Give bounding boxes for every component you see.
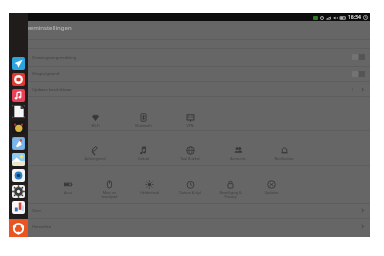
button[interactable]: Music [12, 89, 25, 102]
button[interactable]: Accounts [220, 146, 256, 161]
button[interactable]: Camera [12, 169, 25, 182]
staticText: Herstellen [32, 224, 52, 229]
staticText: Wi-Fi [91, 123, 100, 128]
button[interactable]: Game [12, 121, 25, 134]
button[interactable]: Taal & tekst [172, 146, 208, 161]
button[interactable]: Datum & tijd [172, 180, 208, 195]
button[interactable]: Wi-Fi [77, 113, 113, 128]
staticText: Over [32, 208, 42, 213]
staticText: Systeeminstellingen [15, 24, 72, 32]
button[interactable]: VPN [172, 113, 208, 128]
button[interactable]: Updates [253, 180, 289, 195]
staticText: Datum & tijd [179, 190, 201, 195]
staticText: Taal & tekst [180, 156, 200, 161]
button[interactable]: Photos [12, 153, 25, 166]
button[interactable]: Herstellen [9, 218, 370, 234]
staticText: Helderheid [140, 190, 159, 195]
button[interactable]: Maps [12, 137, 25, 150]
button[interactable]: Vliegtuigstand [9, 66, 370, 81]
staticText: Updates [264, 190, 279, 195]
staticText: Vliegtuigstand [32, 71, 60, 76]
button[interactable]: Over [9, 203, 370, 218]
staticText: VPN [186, 123, 194, 128]
staticText: Notificaties [274, 156, 294, 161]
button[interactable]: Draaiingsvergrendeling [9, 48, 370, 66]
button[interactable]: Ubuntu [9, 219, 28, 237]
staticText: Bluetooth [135, 123, 152, 128]
button[interactable]: Accu [50, 180, 86, 195]
staticText: Draaiingsvergrendeling [32, 55, 77, 60]
staticText: Accu [64, 190, 72, 195]
staticText: Beveiliging & Privacy [219, 190, 242, 199]
staticText: Achtergrond [84, 156, 106, 161]
staticText: Accounts [230, 156, 246, 161]
staticText: 1 [351, 87, 354, 92]
staticText: Updates beschikbaar [32, 87, 72, 92]
button[interactable]: Telegram [12, 57, 25, 70]
button[interactable]: Beveiliging & Privacy [212, 180, 248, 199]
button[interactable]: Geluid [125, 146, 161, 161]
button[interactable]: Office [12, 201, 25, 214]
button[interactable]: Helderheid [131, 180, 167, 195]
button[interactable]: Muis en touchpad [91, 180, 127, 199]
button[interactable]: Updates beschikbaar [9, 81, 370, 97]
staticText: Muis en touchpad [101, 190, 118, 199]
button[interactable]: Notificaties [266, 146, 302, 161]
button[interactable]: Documents [12, 105, 25, 118]
button[interactable]: Bluetooth [125, 113, 161, 128]
staticText: 16:34 [348, 14, 361, 21]
button[interactable]: Settings [12, 185, 25, 198]
staticText: Geluid [138, 156, 149, 161]
button[interactable]: Achtergrond [77, 146, 113, 161]
button[interactable]: YouTube [12, 73, 25, 86]
